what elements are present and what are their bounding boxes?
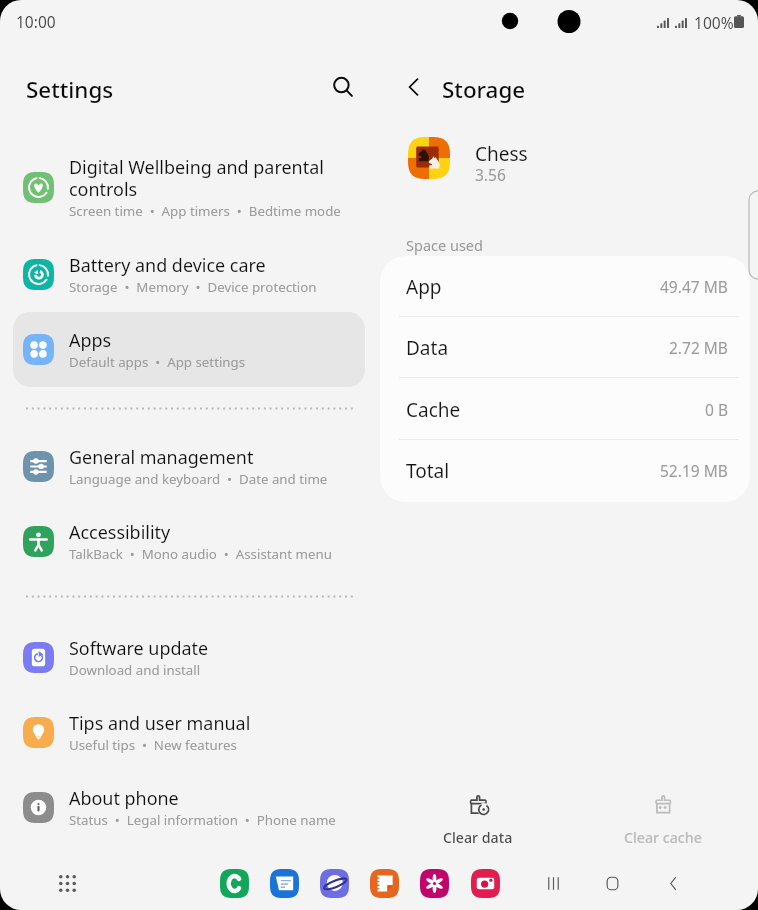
staticText: Space used — [406, 235, 483, 255]
button[interactable]: Cache — [380, 379, 750, 440]
button[interactable]: Back — [654, 864, 692, 902]
staticText: 0 B — [705, 399, 728, 420]
button[interactable]: Camera — [471, 869, 500, 898]
button[interactable]: Software update — [13, 620, 365, 695]
staticText: Chess — [475, 141, 528, 167]
button[interactable]: Digital Wellbeing and parental controls — [13, 139, 365, 235]
staticText: 3.56 — [475, 164, 506, 185]
staticText: Data — [406, 335, 449, 361]
staticText: About phone — [69, 786, 179, 810]
staticText: Battery and device care — [69, 253, 266, 277]
staticText: 2.72 MB — [669, 337, 728, 358]
staticText: Storage — [442, 74, 526, 105]
button[interactable]: Data — [380, 317, 750, 378]
button[interactable]: All apps — [52, 868, 83, 899]
button[interactable]: Apps — [13, 312, 365, 387]
button[interactable]: Battery and device care — [13, 237, 365, 312]
button[interactable]: Search — [323, 67, 363, 107]
staticText: 10:00 — [16, 11, 56, 32]
button[interactable]: Internet — [320, 869, 349, 898]
staticText: Tips and user manual — [69, 711, 251, 735]
button[interactable]: Recent apps — [534, 864, 572, 902]
staticText: Status • Legal information • Phone name — [69, 811, 336, 829]
staticText: Language and keyboard • Date and time — [69, 470, 328, 488]
staticText: Digital Wellbeing and parental controls — [69, 155, 324, 201]
staticText: Storage • Memory • Device protection — [69, 278, 317, 296]
staticText: Clear data — [443, 828, 513, 847]
staticText: 52.19 MB — [660, 460, 728, 481]
staticText: App — [406, 274, 442, 300]
staticText: Total — [406, 458, 450, 484]
button[interactable]: Accessibility — [13, 504, 365, 579]
staticText: Settings — [26, 74, 114, 105]
staticText: Useful tips • New features — [69, 736, 237, 754]
button[interactable]: App — [380, 256, 750, 317]
button[interactable]: Home — [593, 864, 631, 902]
staticText: General management — [69, 445, 254, 469]
button[interactable]: Notes — [370, 869, 399, 898]
staticText: Clear cache — [624, 828, 702, 847]
button[interactable]: Total — [380, 440, 750, 501]
button[interactable]: Gallery — [420, 869, 449, 898]
staticText: Default apps • App settings — [69, 353, 246, 371]
button[interactable]: About phone — [13, 770, 365, 845]
button[interactable]: Back — [394, 67, 434, 107]
staticText: Apps — [69, 328, 112, 352]
staticText: 100% — [694, 12, 734, 33]
button[interactable]: Phone — [220, 869, 249, 898]
button[interactable]: Tips and user manual — [13, 695, 365, 770]
staticText: Cache — [406, 397, 461, 423]
staticText: 49.47 MB — [660, 276, 728, 297]
staticText: Software update — [69, 636, 209, 660]
button[interactable]: Clear cache — [603, 794, 723, 852]
staticText: Download and install — [69, 661, 201, 679]
button[interactable]: General management — [13, 429, 365, 504]
button[interactable]: Messages — [270, 869, 299, 898]
staticText: TalkBack • Mono audio • Assistant menu — [69, 545, 332, 563]
staticText: Accessibility — [69, 520, 171, 544]
staticText: Screen time • App timers • Bedtime mode — [69, 202, 341, 220]
button[interactable]: Clear data — [418, 794, 538, 852]
